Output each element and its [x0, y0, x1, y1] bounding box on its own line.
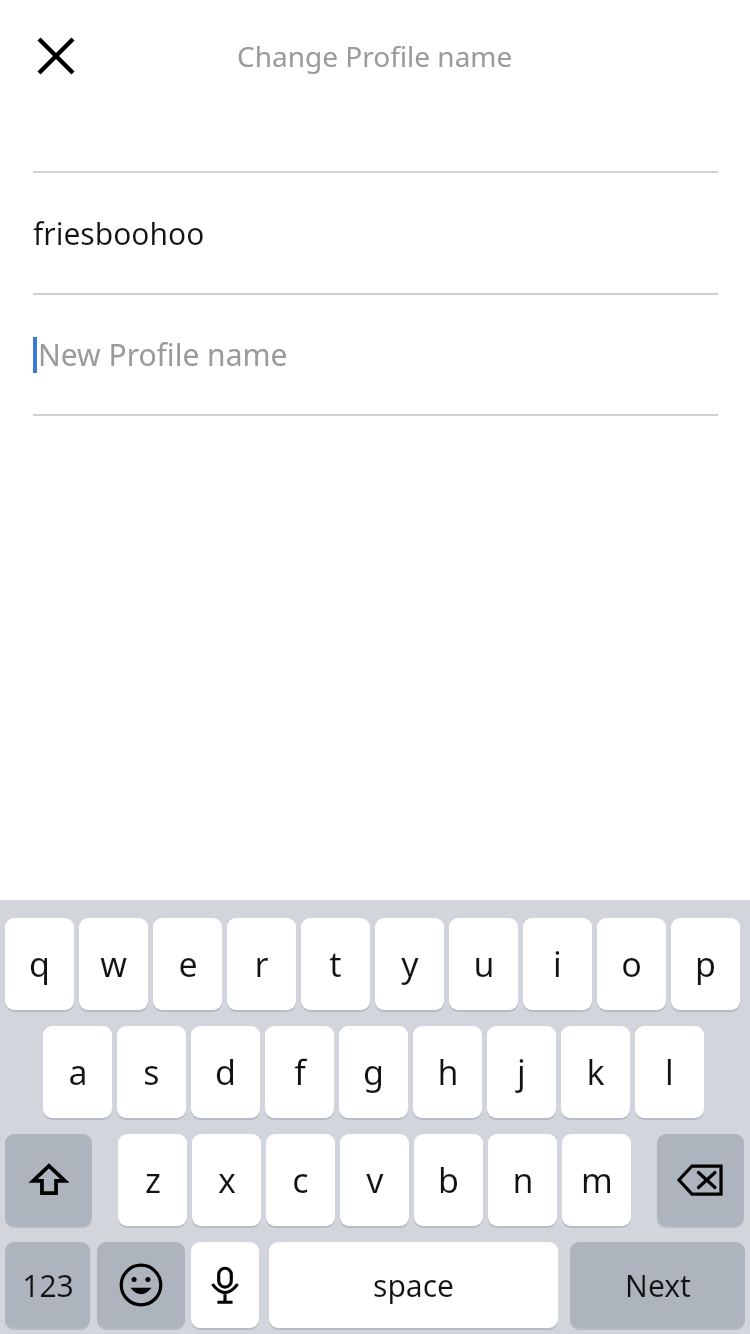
button[interactable]: v	[340, 1134, 409, 1226]
staticText: z	[145, 1157, 161, 1203]
button[interactable]: t	[301, 918, 370, 1010]
button[interactable]: friesboohoo	[0, 173, 750, 293]
staticText: s	[143, 1049, 160, 1095]
staticText: u	[473, 941, 495, 987]
staticText: 123	[22, 1265, 74, 1306]
button[interactable]: j	[487, 1026, 556, 1118]
button[interactable]: New Profile name	[0, 295, 750, 414]
staticText: y	[401, 941, 419, 987]
button[interactable]: w	[79, 918, 148, 1010]
staticText: a	[68, 1049, 88, 1095]
staticText: e	[178, 941, 198, 987]
staticText: o	[621, 941, 642, 987]
staticText: f	[294, 1049, 306, 1095]
staticText: Next	[625, 1265, 691, 1306]
button[interactable]: Next	[570, 1242, 745, 1328]
button[interactable]: n	[488, 1134, 557, 1226]
button[interactable]: r	[227, 918, 296, 1010]
button[interactable]: c	[266, 1134, 335, 1226]
button[interactable]: a	[43, 1026, 112, 1118]
staticText: q	[29, 941, 50, 987]
staticText: h	[437, 1049, 459, 1095]
button[interactable]: 123	[5, 1242, 90, 1328]
button[interactable]: Emoji	[97, 1242, 185, 1328]
staticText: friesboohoo	[33, 213, 205, 254]
button[interactable]: Backspace	[657, 1134, 744, 1226]
staticText: Change Profile name	[237, 37, 513, 75]
staticText: r	[254, 941, 269, 987]
button[interactable]: u	[449, 918, 518, 1010]
staticText: b	[438, 1157, 459, 1203]
button[interactable]: x	[192, 1134, 261, 1226]
staticText: space	[373, 1265, 454, 1306]
button[interactable]: q	[5, 918, 74, 1010]
staticText: w	[100, 941, 127, 987]
button[interactable]: d	[191, 1026, 260, 1118]
button[interactable]: p	[671, 918, 740, 1010]
staticText: d	[215, 1049, 236, 1095]
button[interactable]: e	[153, 918, 222, 1010]
button[interactable]: space	[269, 1242, 558, 1328]
button[interactable]: k	[561, 1026, 630, 1118]
staticText: n	[512, 1157, 534, 1203]
button[interactable]: f	[265, 1026, 334, 1118]
button[interactable]: s	[117, 1026, 186, 1118]
button[interactable]: l	[635, 1026, 704, 1118]
button[interactable]: Voice input	[191, 1242, 259, 1328]
button[interactable]: b	[414, 1134, 483, 1226]
button[interactable]: m	[562, 1134, 631, 1226]
button[interactable]: Close	[22, 22, 90, 90]
button[interactable]: Shift	[5, 1134, 92, 1226]
button[interactable]: g	[339, 1026, 408, 1118]
button[interactable]: z	[118, 1134, 187, 1226]
staticText: v	[366, 1157, 384, 1203]
staticText: i	[553, 941, 562, 987]
staticText: l	[665, 1049, 674, 1095]
button[interactable]: h	[413, 1026, 482, 1118]
staticText: k	[586, 1049, 605, 1095]
staticText: c	[292, 1157, 309, 1203]
staticText: g	[363, 1049, 384, 1095]
button[interactable]: i	[523, 918, 592, 1010]
button[interactable]: y	[375, 918, 444, 1010]
staticText: p	[695, 941, 716, 987]
staticText: j	[517, 1049, 526, 1095]
staticText: m	[581, 1157, 613, 1203]
staticText: t	[329, 941, 342, 987]
staticText: x	[218, 1157, 236, 1203]
button[interactable]: o	[597, 918, 666, 1010]
staticText: New Profile name	[38, 334, 288, 375]
